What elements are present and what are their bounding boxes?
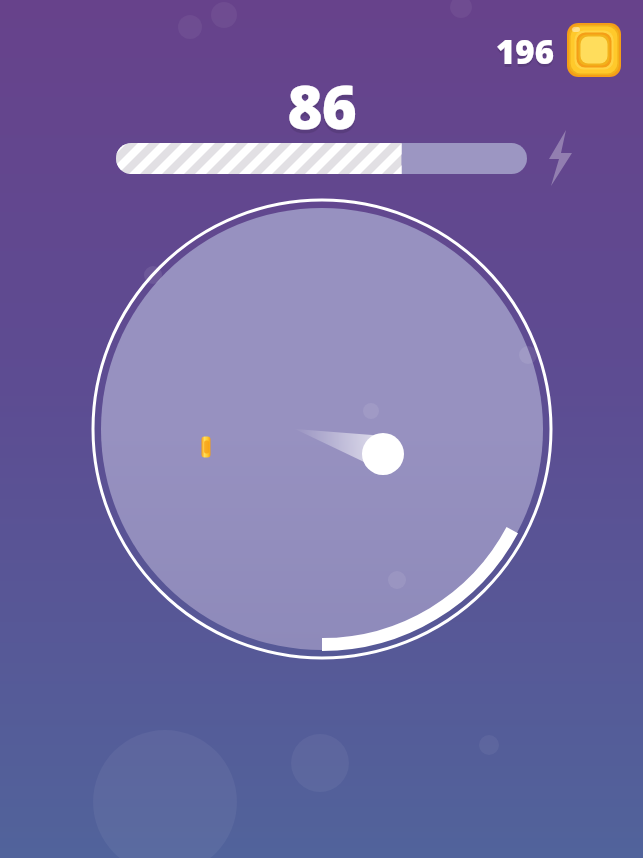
button[interactable] xyxy=(0,0,643,858)
button[interactable]: Play area xyxy=(0,0,643,858)
